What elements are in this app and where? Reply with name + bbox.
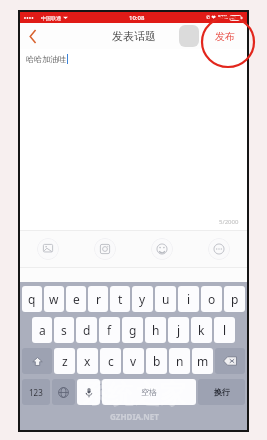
staticText: 5/2000	[219, 218, 239, 226]
button[interactable]: x	[77, 348, 98, 374]
button[interactable]: u	[155, 286, 176, 312]
button[interactable]: 哈哈加油哇	[20, 49, 247, 230]
staticText: o	[208, 291, 216, 307]
staticText: z	[62, 353, 68, 369]
staticText: GZHDIA.NET	[110, 411, 159, 422]
staticText: f	[107, 322, 112, 338]
staticText: 57%	[218, 14, 228, 21]
button[interactable]: f	[99, 317, 120, 343]
staticText: 换行	[214, 387, 230, 397]
staticText: k	[198, 322, 205, 338]
button[interactable]: Emoji	[133, 231, 190, 267]
button[interactable]: v	[123, 348, 144, 374]
button[interactable]: 换行	[198, 379, 245, 405]
button[interactable]: l	[214, 317, 235, 343]
staticText: p	[231, 291, 239, 307]
staticText: ✆ ❤	[206, 14, 216, 21]
button[interactable]: m	[192, 348, 213, 374]
button[interactable]: g	[122, 317, 143, 343]
staticText: 空格	[141, 387, 157, 397]
staticText: b	[153, 353, 161, 369]
staticText: 10:08	[129, 14, 145, 22]
button[interactable]: b	[146, 348, 167, 374]
staticText: g	[129, 322, 137, 338]
staticText: 发表话题	[112, 29, 156, 43]
button[interactable]: a	[32, 317, 52, 343]
button[interactable]: r	[88, 286, 108, 312]
staticText: 123	[29, 387, 43, 398]
button[interactable]: c	[100, 348, 121, 374]
staticText: t	[118, 291, 123, 307]
button[interactable]: t	[110, 286, 130, 312]
button[interactable]: o	[201, 286, 222, 312]
button[interactable]: 空格	[102, 379, 196, 405]
staticText: y	[139, 291, 146, 307]
staticText: v	[130, 353, 137, 369]
staticText: c	[108, 353, 114, 369]
button[interactable]: z	[54, 348, 75, 374]
staticText: w	[49, 291, 59, 307]
button[interactable]: Backspace	[215, 348, 245, 374]
button[interactable]: p	[224, 286, 245, 312]
staticText: u	[162, 291, 170, 307]
staticText: j	[177, 322, 181, 338]
button[interactable]: y	[132, 286, 153, 312]
button[interactable]: Back	[20, 23, 46, 49]
button[interactable]: q	[22, 286, 42, 312]
button[interactable]: d	[76, 317, 97, 343]
staticText: q	[28, 291, 36, 307]
staticText: e	[73, 291, 80, 307]
staticText: i	[187, 291, 191, 307]
button[interactable]: Camera	[76, 231, 133, 267]
staticText: x	[84, 353, 91, 369]
button[interactable]: Add image	[20, 231, 76, 267]
button[interactable]: Voice input	[77, 379, 100, 405]
button[interactable]: w	[44, 286, 64, 312]
staticText: l	[223, 322, 227, 338]
button[interactable]: 123	[22, 379, 50, 405]
button[interactable]: n	[169, 348, 190, 374]
staticText: s	[61, 322, 67, 338]
staticText: h	[152, 322, 160, 338]
button[interactable]: Shift	[22, 348, 52, 374]
button[interactable]: More	[190, 231, 247, 267]
button[interactable]: i	[178, 286, 199, 312]
staticText: 发布	[215, 30, 235, 43]
staticText: m	[197, 353, 209, 369]
staticText: a	[39, 322, 46, 338]
staticText: 哈哈加油哇	[26, 54, 66, 64]
staticText: d	[83, 322, 91, 338]
button[interactable]: h	[145, 317, 166, 343]
button[interactable]: s	[54, 317, 74, 343]
button[interactable]: k	[191, 317, 212, 343]
staticText: 系统之家	[82, 378, 186, 411]
button[interactable]: 发布	[211, 26, 239, 47]
button[interactable]: j	[168, 317, 189, 343]
button[interactable]: e	[66, 286, 86, 312]
button[interactable]: Switch language	[52, 379, 75, 405]
staticText: r	[96, 291, 101, 307]
staticText: 中国联通	[41, 15, 61, 21]
staticText: n	[176, 353, 184, 369]
